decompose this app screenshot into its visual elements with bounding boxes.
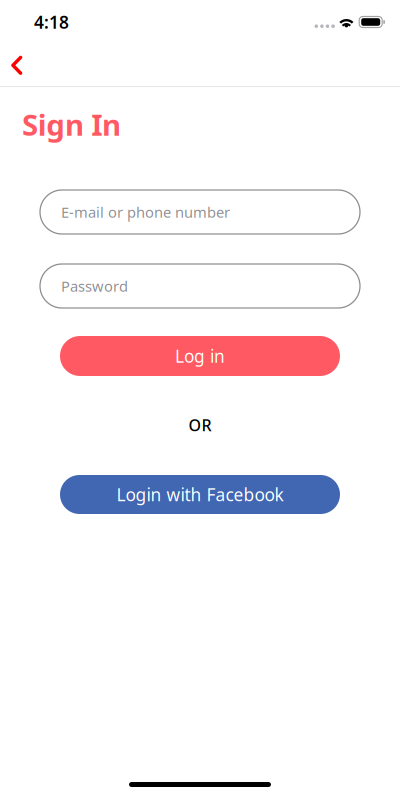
staticText: Password (61, 276, 128, 296)
staticText: Sign In (22, 105, 121, 144)
button[interactable]: Back (0, 46, 39, 84)
staticText: OR (188, 414, 211, 436)
staticText: Log in (175, 344, 225, 367)
staticText: 4:18 (34, 10, 69, 33)
button[interactable]: Login with Facebook (60, 475, 340, 514)
button[interactable]: Log in (60, 336, 340, 376)
button[interactable]: E-mail or phone number (40, 190, 360, 234)
button[interactable]: Password (40, 264, 360, 308)
staticText: E-mail or phone number (61, 202, 230, 222)
staticText: Login with Facebook (116, 483, 283, 506)
